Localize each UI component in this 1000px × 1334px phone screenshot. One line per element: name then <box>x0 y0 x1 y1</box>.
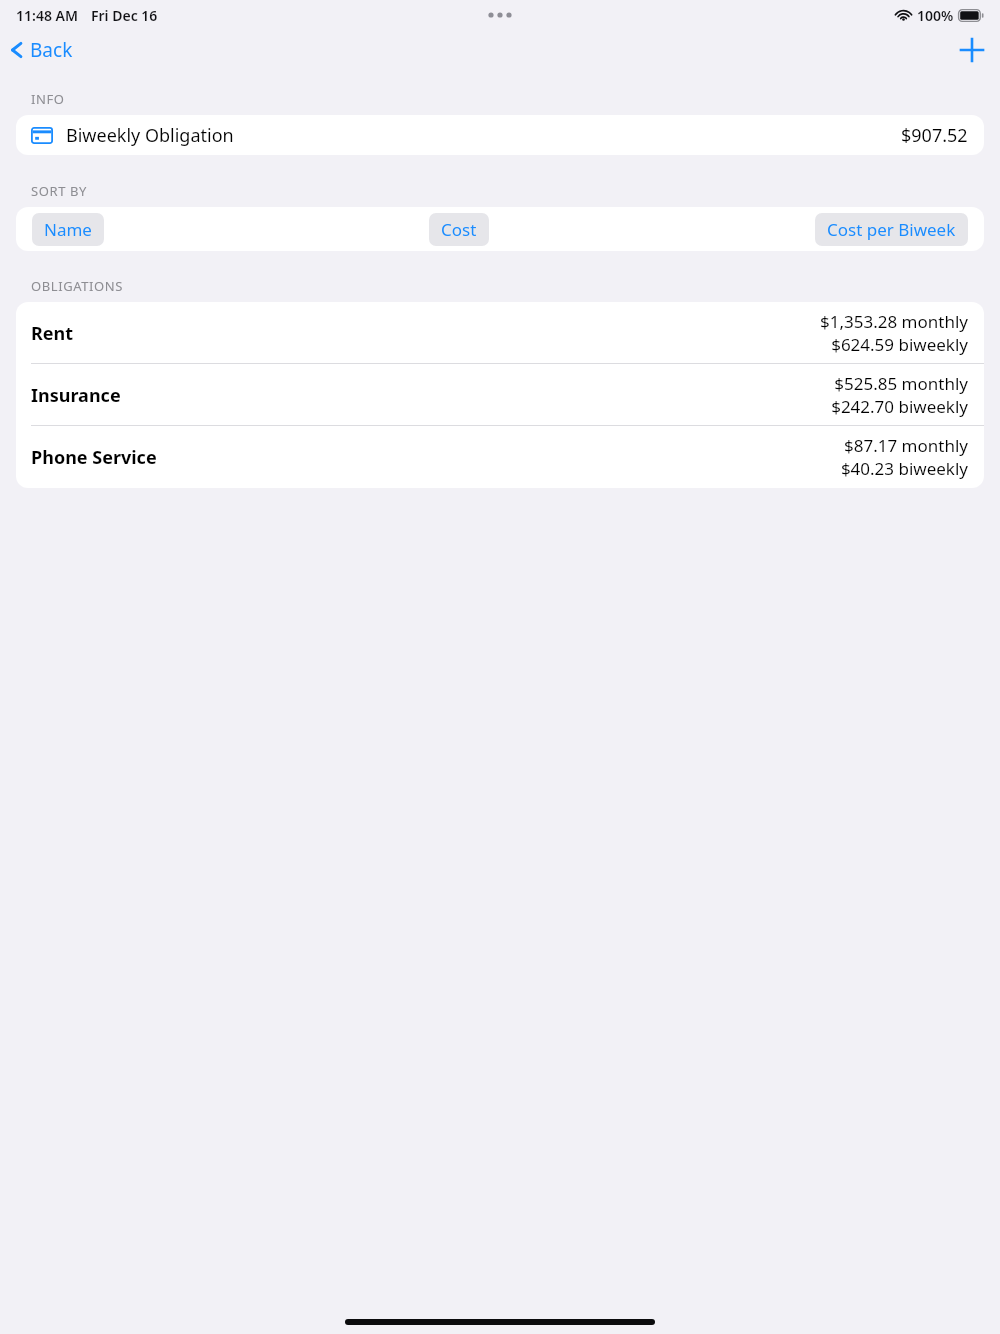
staticText: INFO <box>31 90 65 108</box>
button[interactable]: Back <box>0 33 81 67</box>
staticText: Cost <box>441 218 477 241</box>
staticText: Back <box>30 37 73 63</box>
button[interactable]: Name <box>32 213 104 246</box>
staticText: $624.59 biweekly <box>831 333 968 356</box>
staticText: OBLIGATIONS <box>31 277 124 295</box>
staticText: Cost per Biweek <box>827 218 956 241</box>
button[interactable]: Biweekly Obligation <box>16 115 984 155</box>
staticText: Fri Dec 16 <box>91 6 158 25</box>
staticText: $525.85 monthly <box>834 372 968 395</box>
staticText: 11:48 AM <box>16 6 78 25</box>
button[interactable]: Rent <box>16 302 984 364</box>
button[interactable]: Cost per Biweek <box>815 213 968 246</box>
staticText: $242.70 biweekly <box>831 395 968 418</box>
staticText: Rent <box>31 321 74 346</box>
staticText: $1,353.28 monthly <box>820 310 968 333</box>
staticText: Name <box>44 218 92 241</box>
staticText: $87.17 monthly <box>844 434 968 457</box>
staticText: $40.23 biweekly <box>840 457 968 480</box>
button[interactable]: Add <box>952 30 992 70</box>
staticText: $907.52 <box>901 123 968 148</box>
button[interactable]: Cost <box>429 213 489 246</box>
staticText: Phone Service <box>31 445 157 470</box>
button[interactable]: Insurance <box>16 364 984 426</box>
staticText: SORT BY <box>31 182 87 200</box>
button[interactable]: Phone Service <box>16 426 984 488</box>
staticText: 100% <box>917 6 954 25</box>
staticText: Insurance <box>31 383 121 408</box>
staticText: Biweekly Obligation <box>66 123 234 148</box>
